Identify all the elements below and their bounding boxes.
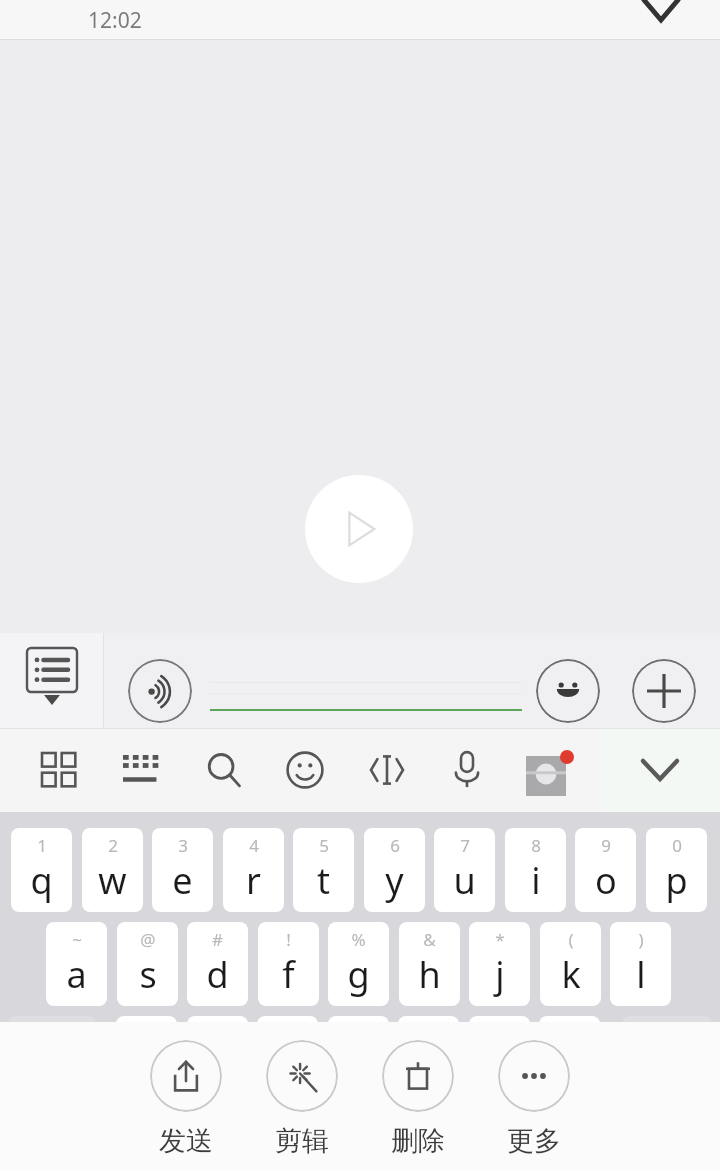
button[interactable]: 4 [223,828,284,912]
staticText: x [208,1044,228,1093]
button[interactable]: ( [540,922,601,1006]
staticText: j [495,950,505,999]
button[interactable]: Apps [29,740,89,800]
staticText: ( [568,928,574,951]
button[interactable]: Hide keyboard [620,742,700,798]
staticText: : [426,1022,431,1045]
button[interactable]: Text cursor [357,740,417,800]
button[interactable]: 发送 [138,1040,234,1158]
button[interactable]: & [399,922,460,1006]
staticText: i [531,856,541,905]
staticText: 发送 [159,1124,213,1158]
button[interactable]: Microphone [437,740,497,800]
staticText: ! [286,928,291,951]
staticText: 4 [249,834,259,857]
staticText: 3 [178,834,188,857]
staticText: % [351,928,366,951]
staticText: 删除 [391,1124,445,1158]
button[interactable]: 0 [646,828,707,912]
staticText: b [417,1044,440,1093]
button[interactable]: Backspace [622,1016,712,1100]
staticText: a [66,950,87,999]
staticText: m [553,1044,587,1093]
button[interactable]: : [398,1016,459,1100]
button[interactable]: @ [117,922,178,1006]
button[interactable]: ! [258,922,319,1006]
button[interactable]: * [469,922,530,1006]
staticText: p [665,856,688,905]
staticText: l [636,950,646,999]
button[interactable]: ; [469,1016,530,1100]
button[interactable]: List [17,648,87,714]
button[interactable]: - [257,1016,318,1100]
staticText: # [212,928,223,951]
staticText: 5 [319,834,329,857]
staticText: y [385,856,404,905]
staticText: * [495,928,505,951]
staticText: g [347,950,370,999]
staticText: 7 [460,834,470,857]
staticText: r [246,856,261,905]
button[interactable]: 9 [575,828,636,912]
staticText: 9 [601,834,611,857]
staticText: - [285,1022,291,1045]
staticText: o [595,856,617,905]
staticText: 2 [108,834,118,857]
button[interactable]: 分词 [8,1016,96,1100]
staticText: z [138,1044,155,1093]
button[interactable]: % [328,922,389,1006]
staticText: 12:02 [88,6,142,35]
staticText: 更多 [507,1124,561,1158]
button[interactable]: _ [328,1016,389,1100]
button[interactable]: Add [632,659,696,723]
button[interactable]: ) [610,922,671,1006]
staticText: h [418,950,441,999]
staticText: e [172,856,193,905]
staticText: s [139,950,157,999]
staticText: u [453,856,476,905]
staticText: @ [140,928,156,951]
button[interactable]: Sticker [522,750,574,802]
button[interactable]: Search [194,740,254,800]
button[interactable]: 、 [116,1016,177,1100]
staticText: ) [638,928,644,951]
button[interactable]: Emoji [536,659,600,723]
button[interactable]: Voice [128,659,192,723]
staticText: & [423,928,436,951]
button[interactable]: Play [305,475,413,583]
staticText: 剪辑 [275,1124,329,1158]
button[interactable]: 删除 [370,1040,466,1158]
button[interactable]: # [187,922,248,1006]
staticText: t [317,856,330,905]
staticText: q [30,856,53,905]
staticText: 8 [531,834,541,857]
button[interactable]: 7 [434,828,495,912]
button[interactable]: Keyboard [112,740,172,800]
button[interactable]: 5 [293,828,354,912]
button[interactable]: 8 [505,828,566,912]
button[interactable]: 剪辑 [254,1040,350,1158]
button[interactable]: 6 [364,828,425,912]
button[interactable]: 更多 [486,1040,582,1158]
button[interactable]: ? [539,1016,600,1100]
staticText: c [279,1044,297,1093]
staticText: d [206,950,229,999]
button[interactable]: ~ [46,922,107,1006]
button[interactable]: Emoticons [275,740,335,800]
button[interactable]: 1 [11,828,72,912]
staticText: 0 [672,834,682,857]
staticText: ~ [72,928,82,951]
button[interactable]: 3 [152,828,213,912]
button[interactable]: / [187,1016,248,1100]
staticText: 1 [37,834,47,857]
button[interactable]: 2 [82,828,143,912]
staticText: n [488,1044,511,1093]
other: Collapse [644,0,678,20]
